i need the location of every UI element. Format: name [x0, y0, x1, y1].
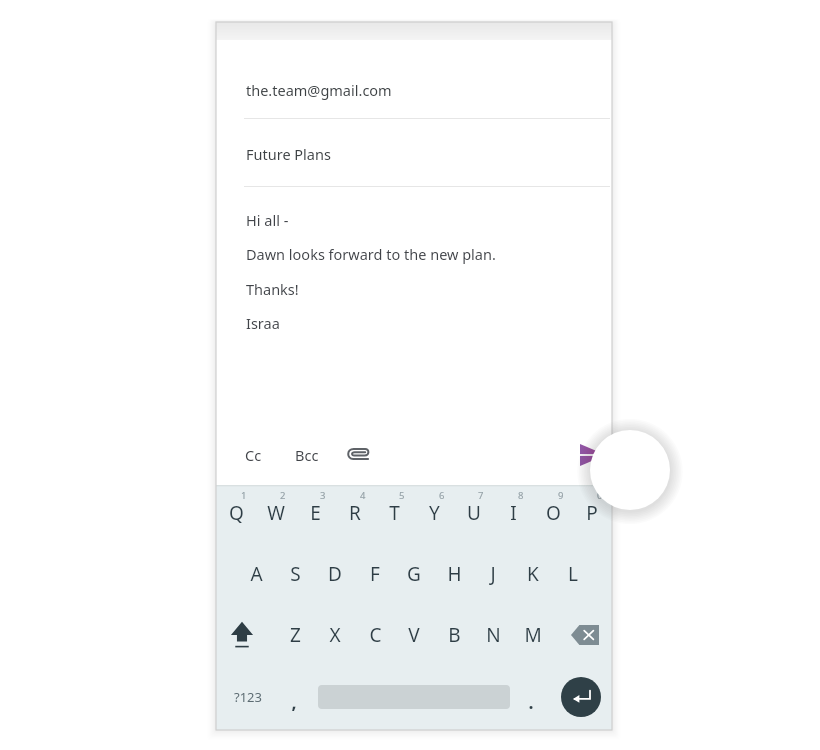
staticText: P [586, 500, 598, 526]
staticText: Dawn looks forward to the new plan. [246, 244, 496, 264]
button[interactable]: H [434, 548, 474, 600]
staticText: W [267, 500, 285, 526]
staticText: , [291, 690, 297, 715]
button[interactable]: V [394, 609, 434, 661]
staticText: 5 [399, 489, 405, 502]
staticText: H [447, 561, 462, 587]
button[interactable]: O [533, 487, 573, 539]
staticText: 2 [280, 489, 286, 502]
button[interactable]: Shift [219, 609, 265, 661]
button[interactable]: Enter [561, 677, 601, 717]
staticText: R [349, 500, 361, 526]
button[interactable]: G [394, 548, 434, 600]
button[interactable]: J [473, 548, 513, 600]
button[interactable]: Q [216, 487, 256, 539]
button[interactable]: R [335, 487, 375, 539]
staticText: F [370, 561, 380, 587]
staticText: O [546, 500, 561, 526]
staticText: 0 [597, 489, 603, 502]
button[interactable]: S [275, 548, 315, 600]
staticText: Hi all - [246, 210, 289, 230]
button[interactable]: Cc [230, 435, 276, 475]
staticText: 4 [360, 489, 366, 502]
button[interactable]: E [295, 487, 335, 539]
staticText: B [448, 622, 461, 648]
staticText: 3 [320, 489, 326, 502]
staticText: T [389, 500, 400, 526]
staticText: Israa [246, 313, 280, 333]
button[interactable]: Z [275, 609, 315, 661]
button[interactable]: M [513, 609, 553, 661]
staticText: J [490, 561, 496, 587]
staticText: C [369, 622, 382, 648]
staticText: Y [429, 500, 440, 526]
staticText: S [290, 561, 301, 587]
button[interactable]: N [473, 609, 513, 661]
staticText: A [250, 561, 263, 587]
staticText: L [568, 561, 578, 587]
staticText: 8 [518, 489, 524, 502]
staticText: E [310, 500, 321, 526]
button[interactable]: B [434, 609, 474, 661]
button[interactable]: , [277, 678, 311, 726]
button[interactable]: F [355, 548, 395, 600]
staticText: Cc [245, 445, 262, 465]
staticText: ?123 [234, 688, 262, 706]
staticText: X [329, 622, 341, 648]
staticText: 7 [478, 489, 484, 502]
button[interactable]: L [553, 548, 593, 600]
staticText: G [407, 561, 421, 587]
staticText: M [524, 622, 542, 648]
button[interactable]: T [374, 487, 414, 539]
button[interactable]: X [315, 609, 355, 661]
staticText: 1 [241, 489, 247, 502]
button[interactable]: I [493, 487, 533, 539]
button[interactable]: K [513, 548, 553, 600]
staticText: V [408, 622, 420, 648]
button[interactable]: ?123 [220, 671, 276, 723]
button[interactable]: Send [571, 435, 615, 475]
staticText: K [527, 561, 539, 587]
button[interactable]: D [315, 548, 355, 600]
button[interactable]: P [572, 487, 612, 539]
staticText: . [528, 690, 534, 715]
staticText: Bcc [295, 445, 319, 465]
staticText: Z [290, 622, 301, 648]
staticText: U [467, 500, 481, 526]
button[interactable]: C [355, 609, 395, 661]
staticText: Q [229, 500, 244, 526]
button[interactable]: Attach file [336, 435, 380, 475]
staticText: D [328, 561, 342, 587]
button[interactable]: . [514, 678, 548, 726]
staticText: N [486, 622, 501, 648]
button[interactable]: W [256, 487, 296, 539]
staticText: the.team@gmail.com [246, 80, 392, 100]
button[interactable]: U [454, 487, 494, 539]
staticText: Thanks! [246, 279, 299, 299]
button[interactable]: A [236, 548, 276, 600]
staticText: Future Plans [246, 144, 331, 164]
button[interactable]: Y [414, 487, 454, 539]
button[interactable]: Backspace [561, 609, 609, 661]
staticText: 9 [558, 489, 564, 502]
staticText: I [510, 500, 517, 526]
button[interactable]: Bcc [280, 435, 334, 475]
staticText: 6 [439, 489, 445, 502]
